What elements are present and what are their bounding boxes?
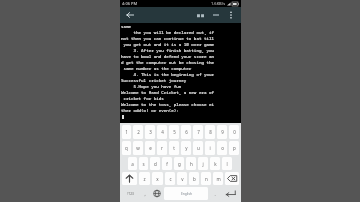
button[interactable]: u	[193, 141, 203, 155]
button[interactable]: h	[186, 157, 196, 170]
button[interactable]: 4	[157, 125, 167, 139]
staticText: z	[143, 176, 146, 182]
staticText: a	[131, 161, 134, 167]
button[interactable]: w	[133, 141, 143, 155]
staticText: l	[226, 161, 228, 167]
button[interactable]: More options	[225, 9, 237, 21]
staticText: not then you can continue to bat till	[121, 36, 214, 42]
staticText: d	[154, 161, 157, 167]
staticText: c	[169, 176, 172, 182]
button[interactable]: n	[201, 172, 211, 185]
staticText: 3. After you finish batting, you	[121, 48, 214, 54]
button[interactable]: g	[174, 157, 184, 170]
button[interactable]: o	[217, 141, 227, 155]
button[interactable]: ,	[140, 187, 150, 200]
staticText: f	[166, 161, 168, 167]
staticText: x	[156, 176, 159, 182]
staticText: 1	[125, 129, 128, 135]
button[interactable]: English	[164, 187, 208, 200]
staticText: q	[125, 145, 128, 151]
staticText: 4:06 PM	[122, 1, 138, 6]
button[interactable]: ?123	[122, 187, 138, 200]
button[interactable]: m	[213, 172, 223, 185]
staticText: s	[142, 161, 145, 167]
button[interactable]: Change language	[152, 187, 162, 200]
staticText: 4. This is the beginning of your	[121, 72, 214, 78]
staticText: u	[197, 145, 200, 151]
button[interactable]: e	[145, 141, 155, 155]
staticText: .	[214, 191, 216, 197]
staticText: English	[181, 192, 192, 196]
button[interactable]: p	[229, 141, 239, 155]
button[interactable]: 2	[133, 125, 143, 139]
staticText: 0	[233, 129, 236, 135]
staticText: 6	[185, 129, 188, 135]
button[interactable]: l	[222, 157, 232, 170]
button[interactable]: y	[181, 141, 191, 155]
staticText: n	[205, 176, 208, 182]
button[interactable]: i	[205, 141, 215, 155]
staticText: k	[214, 161, 217, 167]
button[interactable]: a	[128, 157, 137, 170]
button[interactable]: c	[165, 172, 175, 185]
staticText: same	[121, 24, 132, 30]
staticText: 2	[137, 129, 140, 135]
staticText: same number as the computer	[121, 66, 192, 72]
staticText: m	[216, 176, 221, 182]
button[interactable]: Keyboard	[194, 9, 206, 21]
staticText: ?123	[127, 192, 134, 196]
staticText: 9	[221, 129, 224, 135]
button[interactable]: 7	[193, 125, 203, 139]
staticText: Successful cricket journey	[121, 78, 187, 84]
staticText: 5	[173, 129, 176, 135]
button[interactable]: k	[210, 157, 220, 170]
staticText: Welcome to Hand Cricket, a new era of	[121, 90, 214, 96]
button[interactable]: 8	[205, 125, 215, 139]
button[interactable]: r	[157, 141, 167, 155]
button[interactable]: 5	[169, 125, 179, 139]
button[interactable]: b	[189, 172, 199, 185]
button[interactable]: s	[139, 157, 148, 170]
staticText: you get out and it is a 10 over game	[121, 42, 214, 48]
staticText: y	[185, 145, 188, 151]
button[interactable]: f	[162, 157, 172, 170]
button[interactable]: t	[169, 141, 179, 155]
button[interactable]: z	[139, 172, 150, 185]
staticText: 7	[197, 129, 200, 135]
button[interactable]: Enter	[222, 187, 239, 200]
staticText: ,	[144, 191, 146, 197]
staticText: 3	[149, 129, 152, 135]
button[interactable]: Minimize	[210, 9, 222, 21]
button[interactable]: j	[198, 157, 208, 170]
staticText: Welcome to the toss, please choose ei	[121, 102, 214, 108]
button[interactable]: Back	[124, 9, 136, 21]
staticText: o	[221, 145, 224, 151]
button[interactable]: 3	[145, 125, 155, 139]
staticText: d get the computer out be chosing the	[121, 60, 214, 66]
staticText: r	[161, 145, 163, 151]
button[interactable]: d	[150, 157, 160, 170]
staticText: i	[209, 145, 211, 151]
button[interactable]: v	[177, 172, 187, 185]
staticText: 1.6KB/s	[211, 1, 226, 6]
button[interactable]: 6	[181, 125, 191, 139]
button[interactable]: x	[152, 172, 163, 185]
staticText: j	[202, 161, 204, 167]
button[interactable]: 9	[217, 125, 227, 139]
button[interactable]: Shift	[122, 172, 137, 185]
staticText: the you will be declared out, if	[121, 30, 214, 36]
button[interactable]: Backspace	[225, 172, 239, 185]
staticText: have to bowl and defend your score an	[121, 54, 214, 60]
staticText: h	[190, 161, 193, 167]
button[interactable]: q	[122, 141, 131, 155]
staticText: 8	[209, 129, 212, 135]
staticText: e	[149, 145, 152, 151]
staticText: w	[136, 145, 140, 151]
staticText: b	[193, 176, 196, 182]
button[interactable]: 1	[122, 125, 131, 139]
staticText: p	[233, 145, 236, 151]
staticText: cricket for kids	[121, 96, 164, 102]
staticText: g	[178, 161, 181, 167]
button[interactable]: 0	[229, 125, 239, 139]
